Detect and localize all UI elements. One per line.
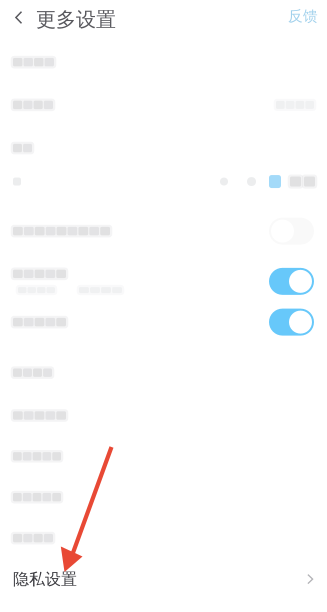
button[interactable] bbox=[0, 298, 327, 347]
button[interactable] bbox=[0, 165, 327, 206]
staticText: 反馈 bbox=[288, 7, 318, 25]
button[interactable] bbox=[0, 436, 327, 477]
button[interactable] bbox=[0, 44, 327, 83]
button[interactable]: 反馈 bbox=[288, 0, 327, 44]
button[interactable] bbox=[0, 477, 327, 518]
button[interactable]: 返回 bbox=[0, 0, 36, 44]
button[interactable] bbox=[0, 252, 327, 298]
button[interactable] bbox=[0, 347, 327, 394]
staticText: 隐私设置 bbox=[13, 569, 77, 589]
button[interactable] bbox=[0, 206, 327, 252]
staticText: 更多设置 bbox=[36, 7, 116, 32]
button[interactable] bbox=[0, 126, 327, 165]
button[interactable]: 隐私设置 bbox=[0, 559, 327, 600]
button[interactable] bbox=[0, 394, 327, 436]
button[interactable] bbox=[0, 518, 327, 559]
button[interactable] bbox=[0, 83, 327, 126]
